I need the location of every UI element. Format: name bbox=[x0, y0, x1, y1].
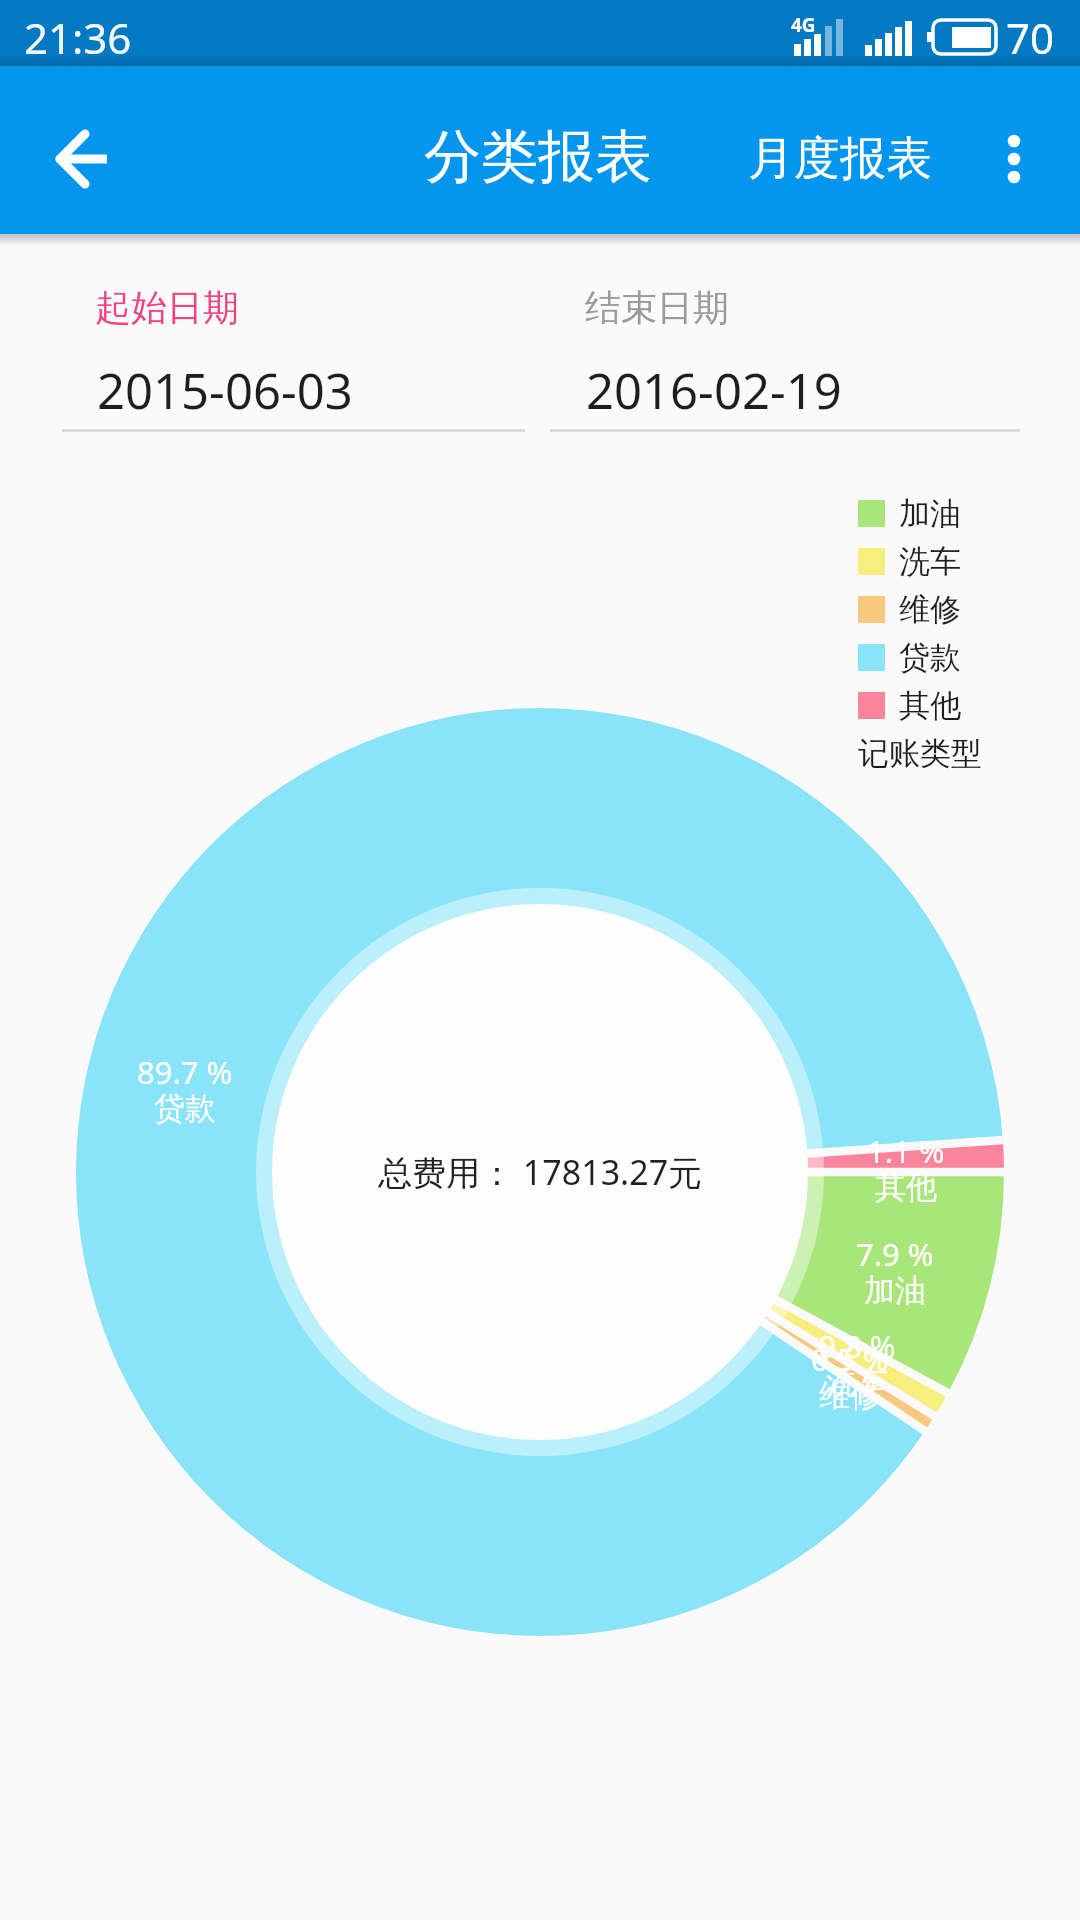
staticText: 89.7 % bbox=[137, 1051, 233, 1093]
staticText: 0.5 % bbox=[811, 1338, 889, 1380]
staticText: 记账类型 bbox=[858, 734, 982, 773]
staticText: 0.8 % bbox=[818, 1325, 896, 1367]
staticText: 维修 bbox=[819, 1376, 881, 1415]
button[interactable] bbox=[978, 132, 1050, 204]
staticText: 起始日期 bbox=[95, 285, 239, 330]
staticText: 加油 bbox=[899, 494, 961, 533]
button[interactable]: 结束日期 bbox=[550, 281, 1020, 441]
staticText: 月度报表 bbox=[748, 130, 932, 188]
staticText: 总费用： 17813.27元 bbox=[378, 1149, 703, 1195]
staticText: 贷款 bbox=[899, 638, 961, 677]
staticText: 分类报表 bbox=[424, 121, 652, 193]
staticText: 7.9 % bbox=[856, 1233, 934, 1275]
staticText: 加油 bbox=[864, 1271, 926, 1310]
button[interactable] bbox=[30, 114, 138, 222]
staticText: 其他 bbox=[899, 686, 961, 725]
staticText: 维修 bbox=[899, 590, 961, 629]
staticText: 21:36 bbox=[24, 9, 132, 66]
staticText: 其他 bbox=[875, 1168, 937, 1207]
button[interactable]: 起始日期 bbox=[62, 281, 525, 441]
button[interactable]: 月度报表 bbox=[720, 114, 960, 204]
staticText: 洗车 bbox=[899, 542, 961, 581]
staticText: 贷款 bbox=[154, 1089, 216, 1128]
staticText: 2015-06-03 bbox=[97, 357, 353, 424]
staticText: 70 bbox=[1006, 9, 1055, 66]
staticText: 1.1 % bbox=[867, 1130, 945, 1172]
staticText: 洗车 bbox=[826, 1363, 888, 1402]
staticText: 2016-02-19 bbox=[586, 357, 842, 424]
staticText: 结束日期 bbox=[585, 285, 729, 330]
staticText: 4G bbox=[791, 12, 816, 38]
